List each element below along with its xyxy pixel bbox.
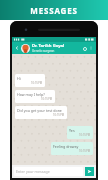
button[interactable]: Did you get your test done	[15, 106, 67, 119]
staticText: 10:15 PM	[41, 97, 53, 101]
button[interactable]: Call	[81, 45, 88, 52]
staticText: 10:15 PM	[53, 113, 65, 117]
button[interactable]: More options	[88, 45, 94, 51]
staticText: Did you get your test done	[17, 108, 62, 113]
staticText: MESSAGES	[30, 5, 78, 16]
button[interactable]: How may I help?	[15, 90, 55, 103]
staticText: Genetic surgeon	[32, 49, 55, 53]
button[interactable]: Yes	[67, 126, 93, 139]
button[interactable]: Back	[14, 45, 20, 51]
staticText: Feeling drowsy	[53, 144, 79, 149]
staticText: Yes	[69, 128, 75, 133]
button[interactable]: Hi	[15, 74, 45, 87]
button[interactable]: Send	[85, 167, 94, 176]
staticText: Hi	[17, 76, 21, 81]
staticText: 10:15 PM	[79, 133, 91, 137]
staticText: Enter your message	[16, 169, 50, 174]
staticText: 10:15 PM	[79, 149, 91, 153]
staticText: 10:15 PM	[31, 81, 43, 85]
staticText: Dr. Tarikh Goyal	[32, 43, 65, 49]
staticText: How may I help?	[17, 92, 45, 97]
button[interactable]: Enter your message	[16, 167, 81, 176]
button[interactable]: Feeling drowsy	[51, 142, 93, 155]
